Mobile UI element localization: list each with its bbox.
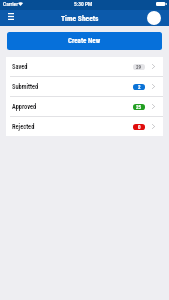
staticText: Submitted bbox=[12, 83, 39, 91]
button[interactable]: Profile bbox=[147, 11, 161, 25]
button[interactable]: Rejected bbox=[6, 117, 163, 136]
staticText: Saved bbox=[12, 63, 28, 71]
staticText: 0 bbox=[138, 124, 141, 130]
staticText: Create New bbox=[68, 37, 101, 45]
staticText: 25 bbox=[136, 104, 142, 110]
staticText: Rejected bbox=[12, 123, 35, 131]
button[interactable]: Create New bbox=[7, 32, 162, 50]
staticText: Time Sheets bbox=[61, 14, 99, 23]
button[interactable]: Approved bbox=[6, 97, 163, 116]
staticText: 5:30 PM bbox=[74, 1, 93, 7]
staticText: Carrier bbox=[3, 1, 18, 7]
staticText: 29 bbox=[136, 64, 142, 70]
button[interactable]: Submitted bbox=[6, 77, 163, 96]
button[interactable]: Menu bbox=[3, 9, 19, 24]
staticText: 2 bbox=[138, 84, 141, 90]
button[interactable]: Saved bbox=[6, 57, 163, 76]
staticText: Approved bbox=[12, 103, 37, 111]
